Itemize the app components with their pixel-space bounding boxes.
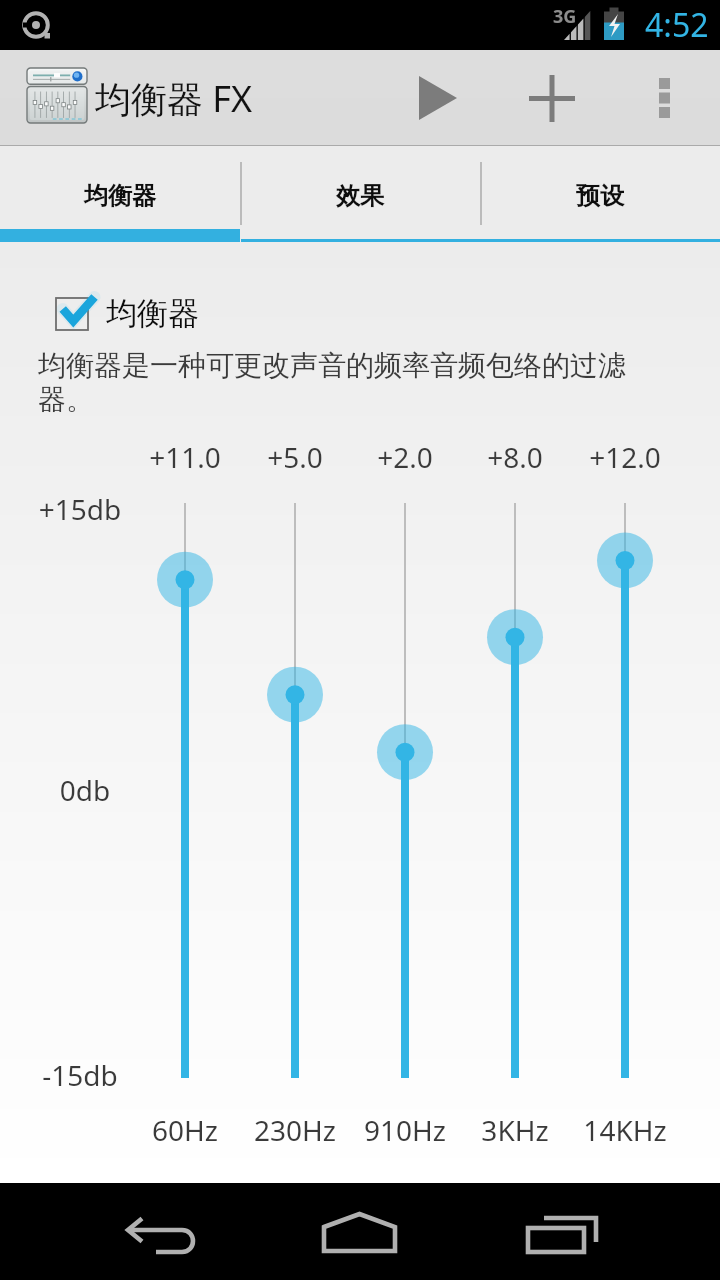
- staticText: 均衡器是一种可更改声音的频率音频包络的过滤器。: [38, 348, 678, 418]
- button[interactable]: 均衡器: [50, 292, 210, 336]
- staticText: +5.0: [215, 438, 375, 476]
- staticText: 效果: [336, 181, 384, 211]
- staticText: 3G: [553, 4, 577, 29]
- button[interactable]: 均衡器: [0, 146, 240, 243]
- staticText: 14KHz: [545, 1111, 705, 1149]
- staticText: 均衡器 FX: [95, 74, 253, 123]
- staticText: 3KHz: [435, 1111, 595, 1149]
- button[interactable]: Recent apps: [480, 1183, 720, 1280]
- staticText: 均衡器: [106, 294, 199, 333]
- staticText: 均衡器: [84, 181, 156, 211]
- button[interactable]: Back: [0, 1183, 240, 1280]
- staticText: 0db: [5, 771, 165, 809]
- button[interactable]: 预设: [480, 146, 720, 243]
- staticText: +12.0: [545, 438, 705, 476]
- staticText: +8.0: [435, 438, 595, 476]
- staticText: 60Hz: [105, 1111, 265, 1149]
- staticText: 910Hz: [325, 1111, 485, 1149]
- staticText: 230Hz: [215, 1111, 375, 1149]
- button[interactable]: Add preset: [504, 50, 600, 146]
- staticText: +2.0: [325, 438, 485, 476]
- staticText: 预设: [576, 181, 624, 211]
- button[interactable]: Play: [390, 50, 486, 146]
- button[interactable]: 效果: [240, 146, 480, 243]
- button[interactable]: Home: [240, 1183, 480, 1280]
- staticText: -15db: [0, 1056, 160, 1094]
- staticText: 4:52: [645, 3, 709, 47]
- staticText: +15db: [0, 490, 160, 528]
- staticText: +11.0: [105, 438, 265, 476]
- button[interactable]: More options: [616, 50, 712, 146]
